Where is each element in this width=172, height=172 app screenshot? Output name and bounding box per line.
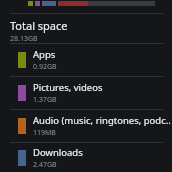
button[interactable]: Audio (music, ringtones, podc..: [0, 110, 172, 142]
button[interactable]: Pictures, videos: [0, 77, 172, 109]
staticText: 2.47GB: [33, 160, 57, 170]
button[interactable]: Apps: [0, 44, 172, 76]
staticText: Pictures, videos: [33, 81, 103, 94]
button[interactable]: Downloads: [0, 143, 172, 172]
button[interactable]: Total space: [0, 14, 172, 43]
staticText: 119MB: [33, 128, 56, 138]
staticText: 28.13GB: [10, 34, 38, 43]
staticText: Apps: [33, 48, 56, 61]
staticText: 1.37GB: [33, 95, 57, 105]
staticText: Downloads: [33, 146, 83, 159]
staticText: Total space: [10, 18, 68, 33]
staticText: Audio (music, ringtones, podc..: [33, 114, 171, 127]
staticText: 0.92GB: [33, 62, 57, 72]
